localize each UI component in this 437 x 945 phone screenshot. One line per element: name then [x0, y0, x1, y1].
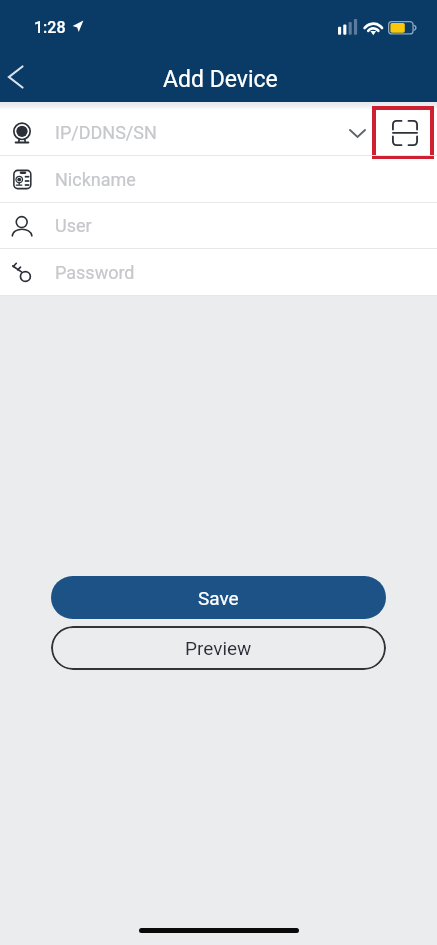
- button[interactable]: Save: [51, 576, 386, 619]
- staticText: Add Device: [163, 66, 278, 93]
- button[interactable]: IP/DDNS/SN: [0, 109, 437, 156]
- staticText: Password: [55, 262, 135, 283]
- button[interactable]: Expand: [340, 116, 374, 150]
- button[interactable]: Back: [0, 54, 44, 98]
- button[interactable]: Preview: [51, 626, 386, 670]
- staticText: User: [55, 215, 92, 236]
- staticText: Preview: [185, 637, 252, 659]
- staticText: 1:28: [34, 18, 66, 37]
- staticText: Nickname: [55, 169, 136, 190]
- button[interactable]: Scan QR code: [372, 109, 437, 156]
- button[interactable]: Password: [0, 249, 437, 296]
- staticText: Save: [198, 587, 239, 609]
- button[interactable]: User: [0, 202, 437, 249]
- button[interactable]: Nickname: [0, 156, 437, 202]
- staticText: IP/DDNS/SN: [55, 122, 157, 143]
